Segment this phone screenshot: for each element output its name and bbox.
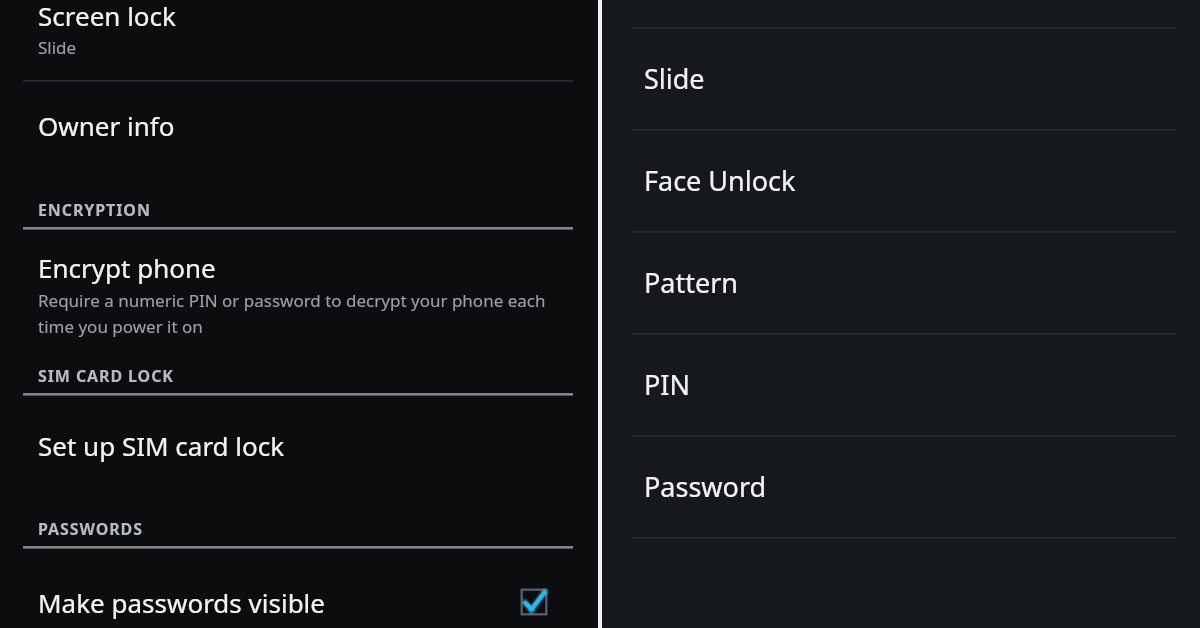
button[interactable]: Owner info bbox=[0, 84, 598, 166]
staticText: Slide bbox=[38, 36, 77, 59]
button[interactable]: Make passwords visible bbox=[0, 560, 598, 628]
staticText: SIM CARD LOCK bbox=[38, 365, 174, 387]
button[interactable]: Slide bbox=[602, 27, 1200, 129]
staticText: PIN bbox=[644, 366, 691, 403]
button[interactable]: Password bbox=[602, 435, 1200, 537]
button[interactable]: Screen lock bbox=[0, 0, 598, 80]
staticText: Owner info bbox=[38, 108, 175, 143]
staticText: Screen lock bbox=[38, 0, 176, 33]
staticText: Password bbox=[644, 468, 767, 505]
button[interactable]: Face Unlock bbox=[602, 129, 1200, 231]
staticText: ENCRYPTION bbox=[38, 199, 151, 221]
staticText: Face Unlock bbox=[644, 162, 796, 199]
staticText: Set up SIM card lock bbox=[38, 428, 285, 463]
staticText: Require a numeric PIN or password to dec… bbox=[38, 289, 558, 338]
button[interactable]: Make passwords visible toggle bbox=[516, 584, 552, 620]
button[interactable]: Set up SIM card lock bbox=[0, 404, 598, 486]
staticText: PASSWORDS bbox=[38, 518, 143, 540]
staticText: Slide bbox=[644, 60, 705, 97]
staticText: Encrypt phone bbox=[38, 250, 216, 285]
button[interactable]: Pattern bbox=[602, 231, 1200, 333]
button[interactable]: Encrypt phone bbox=[0, 240, 598, 350]
button[interactable]: PIN bbox=[602, 333, 1200, 435]
staticText: Pattern bbox=[644, 264, 739, 301]
staticText: Make passwords visible bbox=[38, 585, 325, 620]
